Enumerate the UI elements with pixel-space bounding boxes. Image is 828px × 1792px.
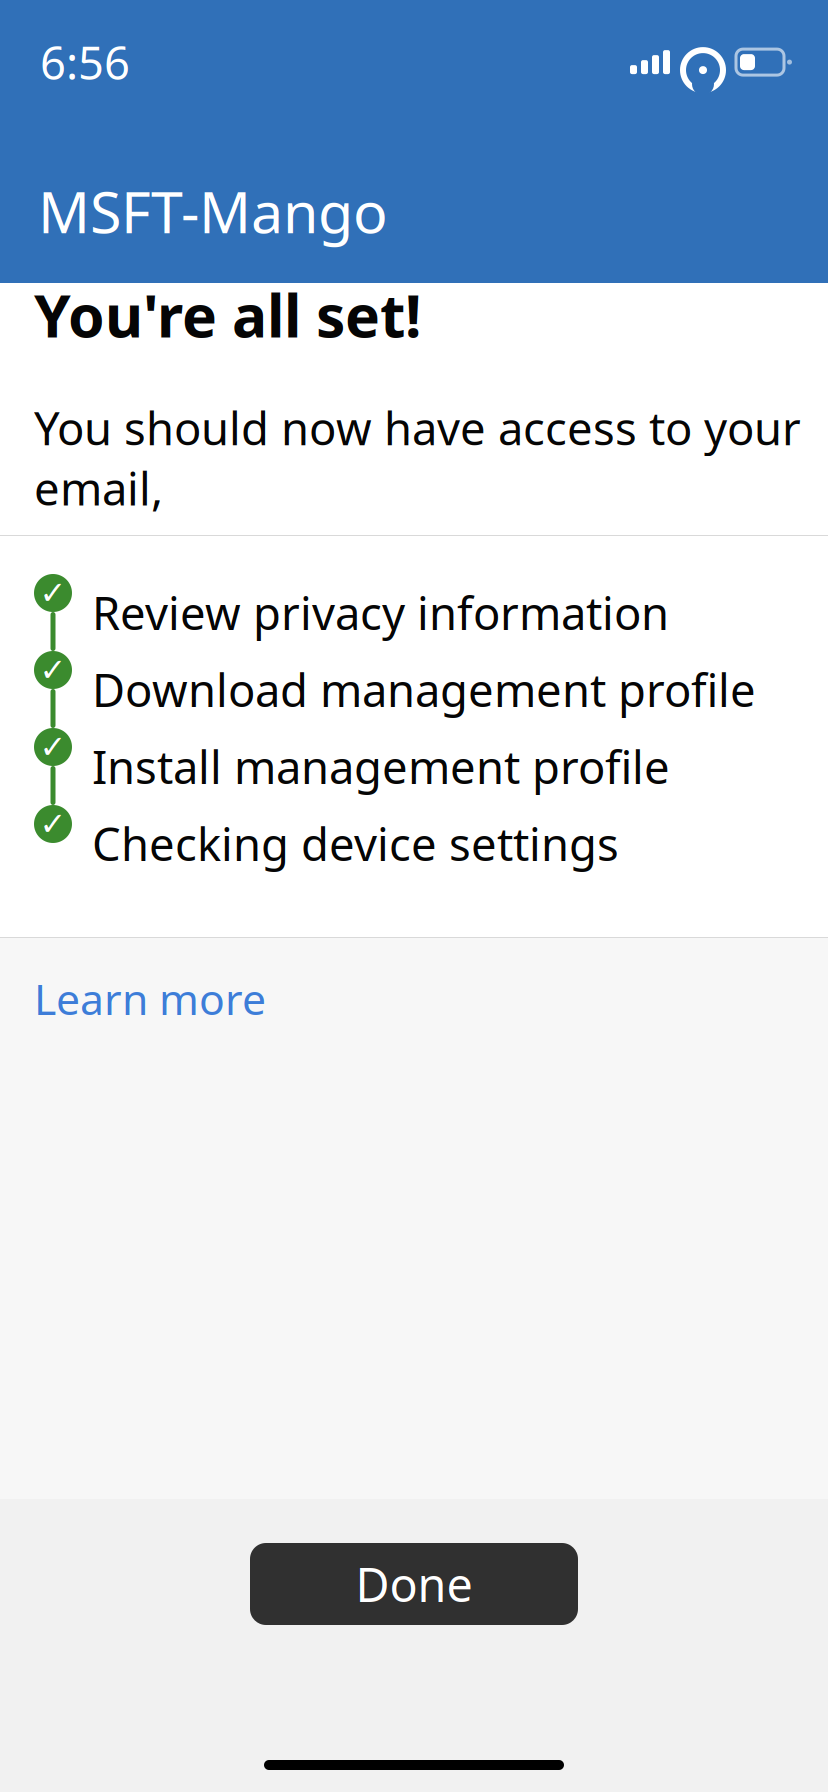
staticText: You should now have access to your email… <box>34 398 801 518</box>
button[interactable]: Learn more <box>0 938 290 1043</box>
staticText: Review privacy information <box>92 582 669 643</box>
staticText: ✓ <box>39 575 66 611</box>
staticText: 6:56 <box>40 32 130 92</box>
staticText: ✓ <box>39 729 66 765</box>
staticText: Install management profile <box>92 736 670 797</box>
staticText: You're all set! <box>34 276 422 354</box>
staticText: Download management profile <box>92 659 756 720</box>
staticText: ✓ <box>39 652 66 688</box>
staticText: Learn more <box>34 970 266 1027</box>
button[interactable]: Done <box>250 1543 578 1625</box>
staticText: Done <box>355 1553 472 1615</box>
staticText: Checking device settings <box>92 813 619 874</box>
staticText: ✓ <box>39 806 66 842</box>
staticText: MSFT-Mango <box>38 173 388 249</box>
staticText: devices, Wi-Fi, and apps for work. <box>34 526 745 586</box>
